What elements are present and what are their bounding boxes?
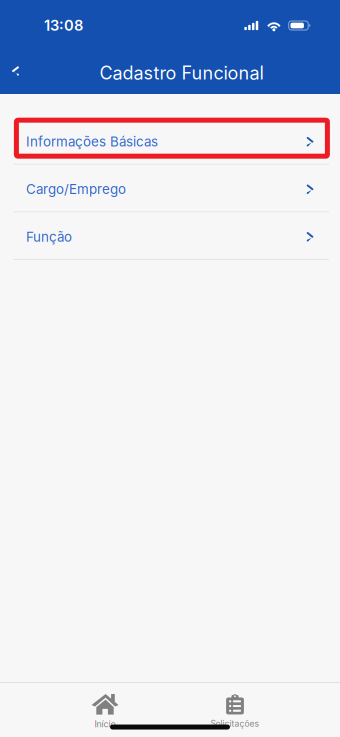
button[interactable]: Informações Básicas [0,117,340,165]
staticText: Função [26,229,72,245]
button[interactable]: Início [40,694,170,729]
staticText: 13:08 [44,17,83,34]
staticText: Cargo/Emprego [26,181,126,197]
staticText: Solicitações [210,718,259,729]
button[interactable]: Cargo/Emprego [0,165,340,212]
staticText: Início [94,719,115,729]
staticText: Cadastro Funcional [100,62,264,84]
button[interactable]: Back [0,51,31,91]
button[interactable]: Função [0,212,340,260]
button[interactable]: Solicitações [170,695,300,729]
staticText: Informações Básicas [26,134,158,150]
